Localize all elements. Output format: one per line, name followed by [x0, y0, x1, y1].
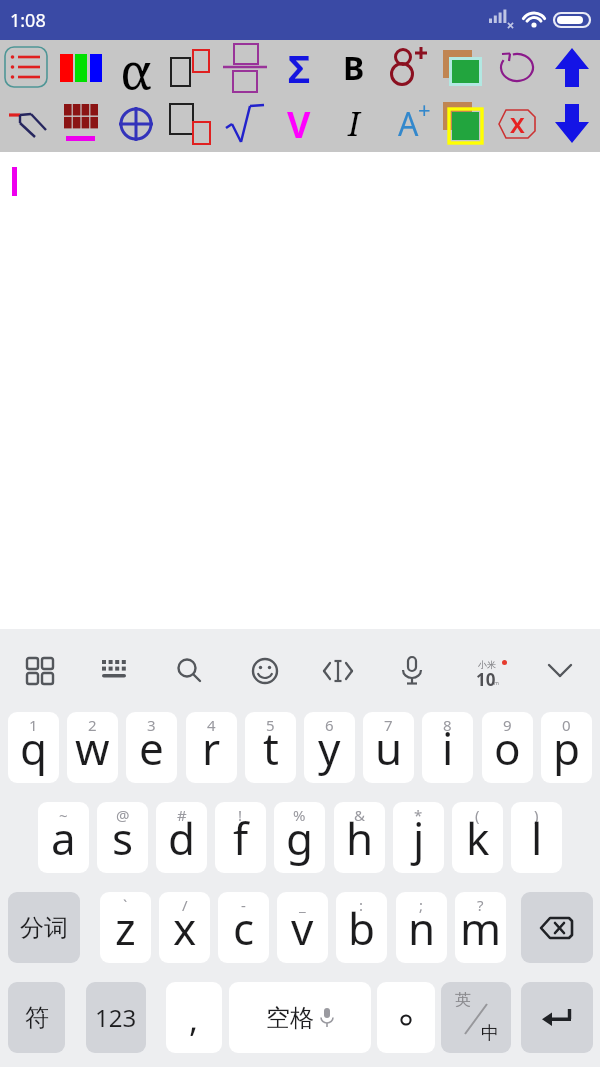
button[interactable]: ~	[38, 802, 89, 873]
button[interactable]: /	[159, 892, 210, 963]
button[interactable]	[545, 40, 599, 96]
button[interactable]	[490, 40, 544, 96]
button[interactable]: 1	[8, 712, 59, 783]
button[interactable]	[163, 40, 217, 96]
staticText: A	[398, 102, 419, 146]
staticText: c	[233, 898, 255, 958]
button[interactable]: B	[327, 40, 381, 96]
staticText: 1	[29, 715, 38, 735]
staticText: 分词	[20, 913, 68, 943]
staticText: @	[116, 805, 130, 825]
staticText: b	[348, 898, 376, 958]
staticText: Σ	[288, 42, 311, 94]
button[interactable]: 0	[541, 712, 592, 783]
button[interactable]	[0, 96, 54, 152]
button[interactable]: %	[274, 802, 325, 873]
staticText: !	[238, 805, 243, 825]
button[interactable]: 英	[441, 982, 511, 1053]
button[interactable]: &	[334, 802, 385, 873]
button[interactable]: 空格	[229, 982, 371, 1053]
button[interactable]: !	[215, 802, 266, 873]
button[interactable]: )	[511, 802, 562, 873]
button[interactable]	[0, 40, 54, 96]
button[interactable]	[54, 96, 108, 152]
button[interactable]	[377, 982, 435, 1053]
button[interactable]: #	[156, 802, 207, 873]
staticText: l	[531, 808, 543, 868]
staticText: a	[51, 808, 76, 868]
button[interactable]	[170, 651, 210, 691]
button[interactable]	[95, 651, 135, 691]
button[interactable]: ;	[396, 892, 447, 963]
staticText: 0	[562, 715, 571, 735]
staticText: α	[120, 37, 152, 93]
button[interactable]	[54, 40, 108, 96]
button[interactable]: 7	[363, 712, 414, 783]
button[interactable]	[109, 96, 163, 152]
button[interactable]: (	[452, 802, 503, 873]
button[interactable]	[521, 982, 593, 1053]
button[interactable]	[381, 40, 435, 96]
button[interactable]	[163, 96, 217, 152]
button[interactable]	[540, 651, 580, 691]
staticText: +	[418, 94, 431, 124]
button[interactable]: A	[381, 96, 435, 152]
staticText: t	[263, 718, 279, 778]
button[interactable]	[20, 651, 60, 691]
staticText: o	[494, 718, 521, 778]
button[interactable]: @	[97, 802, 148, 873]
button[interactable]: Σ	[272, 40, 326, 96]
staticText: m	[460, 898, 502, 958]
button[interactable]: I	[327, 96, 381, 152]
staticText: r	[202, 718, 221, 778]
button[interactable]	[392, 651, 432, 691]
button[interactable]	[218, 40, 272, 96]
button[interactable]: 5	[245, 712, 296, 783]
button[interactable]: 6	[304, 712, 355, 783]
button[interactable]: 8	[422, 712, 473, 783]
button[interactable]: 3	[126, 712, 177, 783]
staticText: &	[354, 805, 365, 825]
button[interactable]: -	[218, 892, 269, 963]
staticText: p	[553, 718, 581, 778]
staticText: ₘ	[494, 675, 499, 686]
button[interactable]: α	[109, 40, 163, 96]
staticText: 小米	[478, 659, 496, 670]
button[interactable]	[318, 651, 358, 691]
button[interactable]: ,	[166, 982, 222, 1053]
button[interactable]	[245, 651, 285, 691]
staticText: ;	[419, 895, 424, 915]
button[interactable]: 小米	[466, 651, 506, 691]
button[interactable]	[436, 96, 490, 152]
button[interactable]: 9	[482, 712, 533, 783]
button[interactable]: *	[393, 802, 444, 873]
staticText: 123	[95, 1001, 137, 1034]
staticText: z	[115, 898, 136, 958]
button[interactable]: 123	[86, 982, 146, 1053]
button[interactable]: 2	[67, 712, 118, 783]
button[interactable]: X	[490, 96, 544, 152]
button[interactable]: V	[272, 96, 326, 152]
button[interactable]	[436, 40, 490, 96]
staticText: ,	[189, 996, 199, 1042]
staticText: 8	[443, 715, 452, 735]
button[interactable]	[521, 892, 593, 963]
button[interactable]: :	[336, 892, 387, 963]
staticText: w	[75, 718, 110, 778]
button[interactable]	[218, 96, 272, 152]
button[interactable]: ?	[455, 892, 506, 963]
staticText: h	[346, 808, 374, 868]
staticText: 空格	[266, 1003, 314, 1033]
staticText: e	[139, 718, 164, 778]
staticText: 2	[88, 715, 97, 735]
button[interactable]: 符	[8, 982, 65, 1053]
button[interactable]: 4	[186, 712, 237, 783]
button[interactable]: `	[100, 892, 151, 963]
button[interactable]: 分词	[8, 892, 80, 963]
staticText: 1:08	[10, 8, 46, 33]
button[interactable]	[545, 96, 599, 152]
button[interactable]: _	[277, 892, 328, 963]
staticText: u	[375, 718, 403, 778]
staticText: j	[413, 808, 425, 868]
staticText: -	[241, 895, 246, 915]
